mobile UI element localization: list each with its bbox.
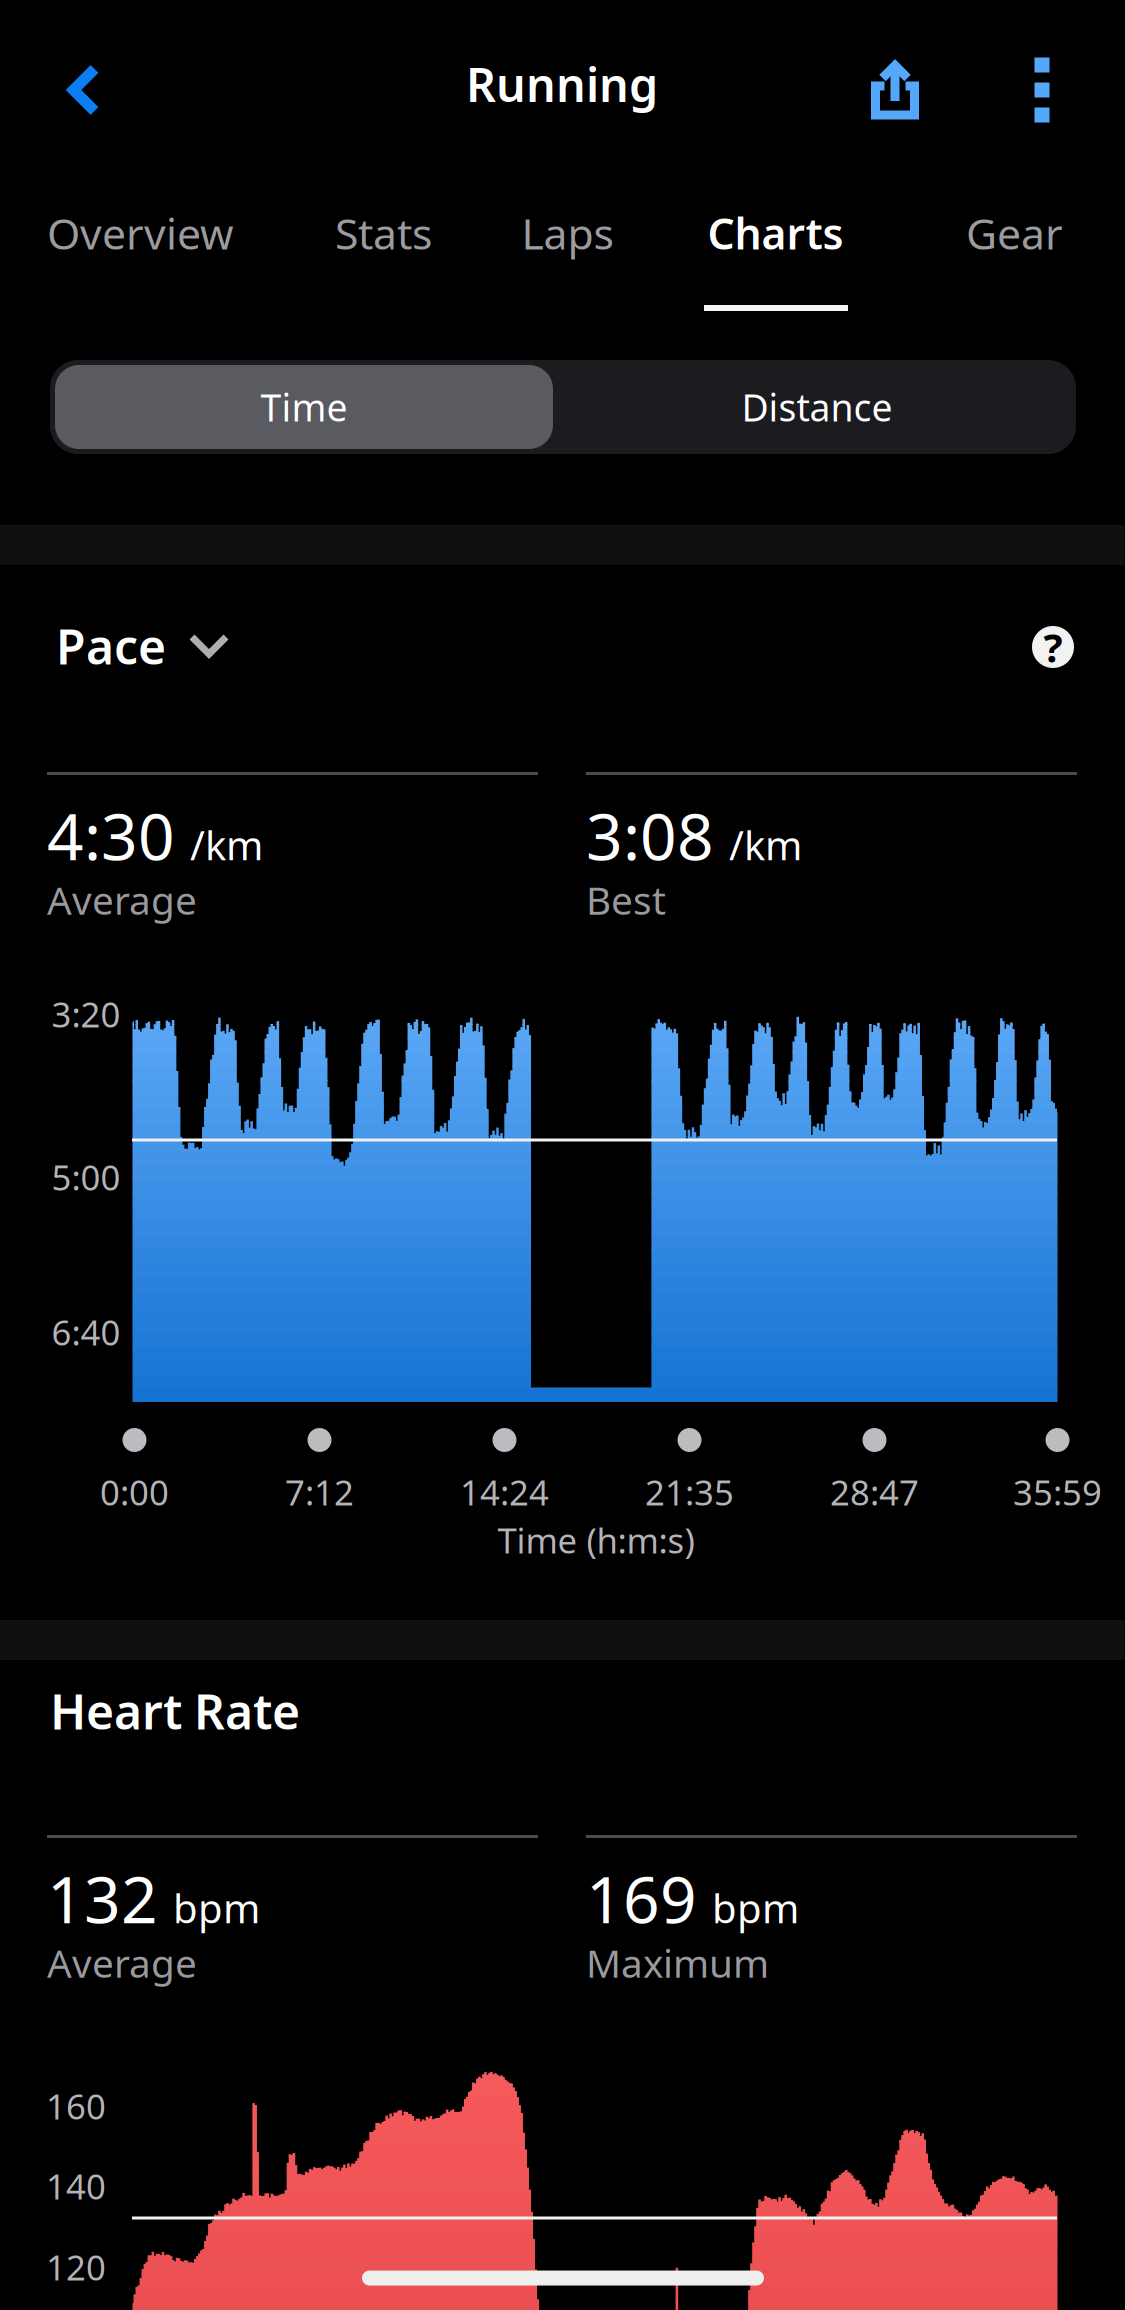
staticText: Pace xyxy=(56,614,166,678)
staticText: Overview xyxy=(47,205,234,261)
staticText: bpm xyxy=(173,1881,260,1934)
button[interactable]: Time xyxy=(55,365,553,449)
button[interactable]: Back xyxy=(29,30,139,150)
button[interactable]: Share xyxy=(835,30,955,150)
staticText: Gear xyxy=(966,205,1063,261)
button[interactable]: Pace xyxy=(48,596,238,696)
staticText: 160 xyxy=(46,2083,106,2129)
staticText: 14:24 xyxy=(460,1469,549,1515)
staticText: Distance xyxy=(741,382,892,432)
staticText: 120 xyxy=(46,2244,106,2290)
button[interactable]: Stats xyxy=(315,181,452,285)
button[interactable]: Distance xyxy=(568,365,1066,449)
staticText: Charts xyxy=(707,205,843,261)
staticText: 3:08 xyxy=(586,793,714,878)
staticText: Stats xyxy=(335,205,432,261)
staticText: 28:47 xyxy=(830,1469,919,1515)
staticText: 6:40 xyxy=(51,1309,120,1355)
staticText: Maximum xyxy=(586,1937,769,1988)
button[interactable]: Laps xyxy=(501,181,633,285)
staticText: 140 xyxy=(46,2163,106,2209)
button[interactable]: Gear xyxy=(946,181,1083,285)
button[interactable]: Charts xyxy=(687,181,863,285)
staticText: 7:12 xyxy=(285,1469,354,1515)
staticText: /km xyxy=(190,818,263,871)
staticText: 4:30 xyxy=(47,793,175,878)
staticText: 3:20 xyxy=(51,991,120,1037)
staticText: Heart Rate xyxy=(50,1679,300,1743)
staticText: 0:00 xyxy=(100,1469,169,1515)
button[interactable]: Help xyxy=(1018,612,1088,682)
staticText: Average xyxy=(47,874,197,925)
staticText: /km xyxy=(729,818,802,871)
staticText: 5:00 xyxy=(51,1154,120,1200)
staticText: Average xyxy=(47,1937,197,1988)
button[interactable]: More options xyxy=(992,30,1092,150)
staticText: Best xyxy=(586,874,666,925)
button[interactable]: Overview xyxy=(27,181,254,285)
staticText: 21:35 xyxy=(645,1469,734,1515)
staticText: Laps xyxy=(521,205,613,261)
staticText: 35:59 xyxy=(1013,1469,1102,1515)
staticText: ? xyxy=(1043,620,1062,673)
staticText: Running xyxy=(466,53,658,115)
staticText: Time xyxy=(260,382,347,432)
staticText: bpm xyxy=(712,1881,799,1934)
staticText: 132 xyxy=(47,1856,158,1941)
staticText: Time (h:m:s) xyxy=(497,1517,694,1563)
staticText: 169 xyxy=(586,1856,697,1941)
